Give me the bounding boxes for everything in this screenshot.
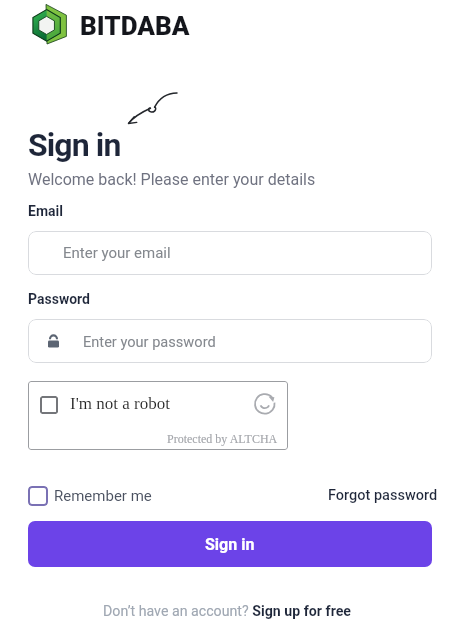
- staticText: Sign in: [28, 126, 121, 164]
- staticText: BITDABA: [80, 11, 190, 41]
- staticText: I'm not a robot: [70, 394, 170, 413]
- button[interactable]: Enter your password: [28, 319, 432, 363]
- button[interactable]: Sign in: [28, 521, 432, 567]
- other: Refresh captcha: [254, 391, 278, 415]
- staticText: Password: [28, 291, 90, 307]
- staticText: Sign in: [205, 535, 255, 554]
- button[interactable]: Remember me: [28, 486, 152, 506]
- staticText: Welcome back! Please enter your details: [28, 170, 316, 189]
- button[interactable]: I'm not a robot: [28, 381, 288, 450]
- button[interactable]: Don’t have an account? Sign up for free: [103, 603, 352, 620]
- staticText: Enter your password: [83, 333, 216, 350]
- staticText: Protected by ALTCHA: [167, 432, 278, 445]
- staticText: Don’t have an account? Sign up for free: [103, 603, 352, 620]
- button[interactable]: Enter your email: [28, 231, 432, 275]
- staticText: Email: [28, 203, 63, 219]
- staticText: Remember me: [54, 487, 152, 505]
- staticText: Enter your email: [63, 244, 171, 262]
- button[interactable]: Forgot password: [328, 487, 438, 504]
